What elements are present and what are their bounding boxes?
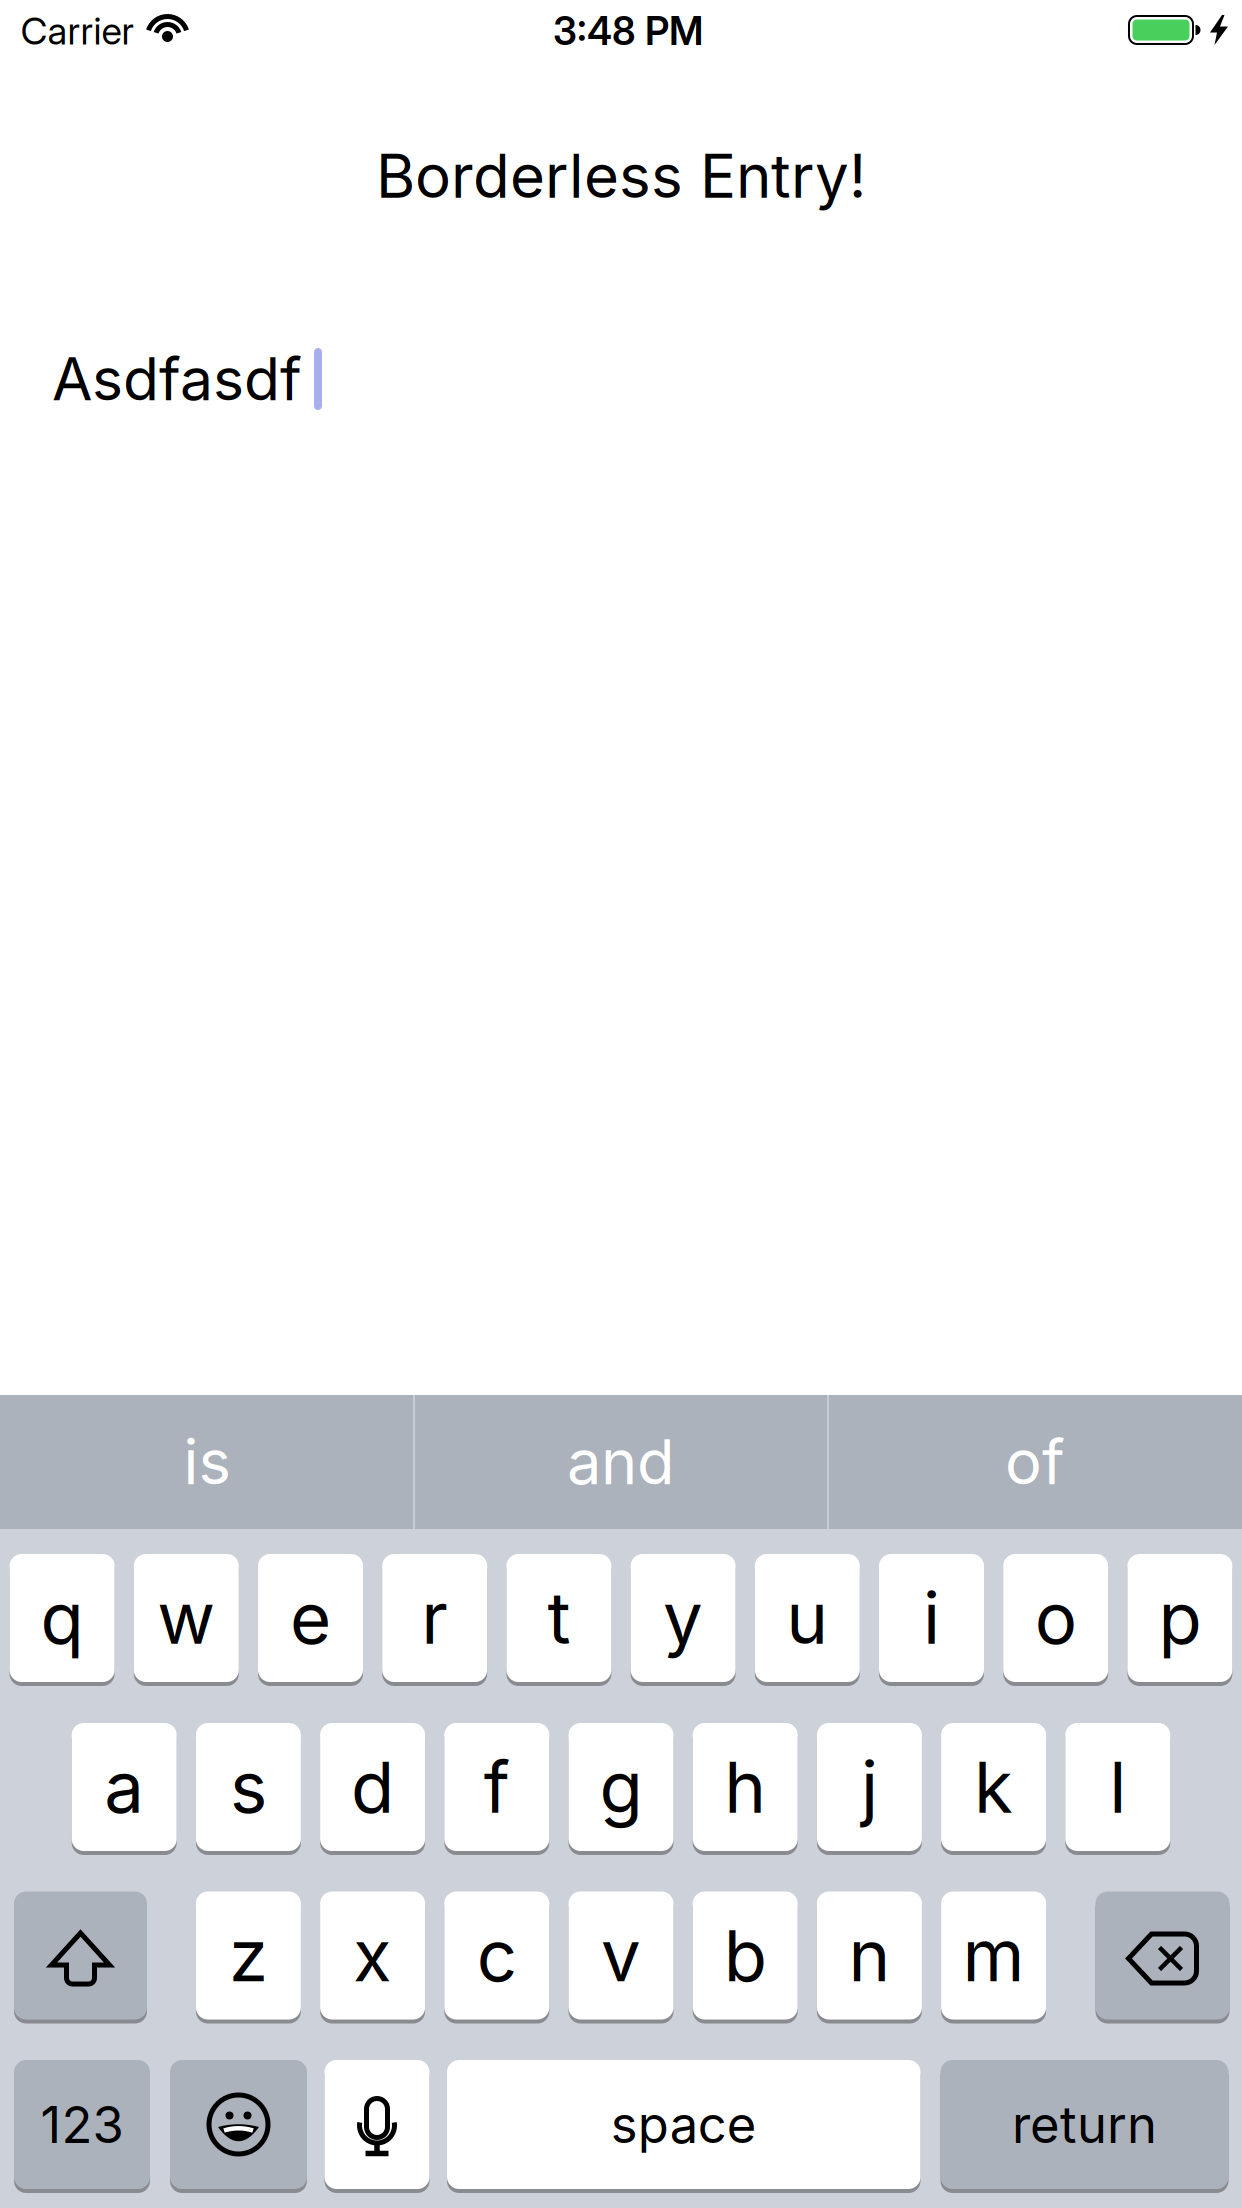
staticText: x	[353, 1914, 392, 1997]
staticText: z	[229, 1914, 268, 1997]
staticText: space	[611, 2095, 757, 2154]
staticText: q	[41, 1576, 84, 1660]
button[interactable]: e	[258, 1552, 363, 1684]
staticText: 123	[40, 2095, 123, 2154]
button[interactable]: a	[72, 1721, 177, 1853]
button[interactable]	[1095, 1889, 1229, 2021]
button[interactable]: d	[320, 1721, 425, 1853]
staticText: v	[601, 1914, 641, 1997]
staticText: is	[183, 1426, 230, 1498]
button[interactable]: s	[196, 1721, 301, 1853]
staticText: t	[547, 1576, 570, 1660]
button[interactable]: r	[382, 1552, 487, 1684]
button[interactable]: q	[10, 1552, 115, 1684]
button[interactable]: i	[879, 1552, 984, 1684]
button[interactable]	[324, 2058, 429, 2191]
button[interactable]: w	[134, 1552, 239, 1684]
staticText: e	[290, 1576, 331, 1660]
staticText: b	[724, 1914, 767, 1997]
staticText: of	[1005, 1426, 1065, 1498]
staticText: a	[104, 1745, 144, 1829]
button[interactable]: u	[755, 1552, 860, 1684]
staticText: 3:48 PM	[553, 8, 703, 54]
staticText: l	[1109, 1745, 1126, 1829]
button[interactable]: is	[5, 1395, 409, 1529]
button[interactable]: n	[817, 1889, 922, 2021]
staticText: Carrier	[20, 9, 133, 53]
staticText: y	[663, 1576, 703, 1660]
staticText: s	[230, 1745, 267, 1829]
staticText: n	[848, 1914, 890, 1997]
button[interactable]	[170, 2058, 307, 2191]
button[interactable]: of	[833, 1395, 1237, 1529]
button[interactable]: b	[693, 1889, 798, 2021]
button[interactable]: g	[568, 1721, 673, 1853]
button[interactable]: h	[693, 1721, 798, 1853]
button[interactable]: t	[506, 1552, 611, 1684]
staticText: d	[351, 1745, 394, 1829]
staticText: f	[484, 1745, 510, 1829]
staticText: h	[724, 1745, 766, 1829]
staticText: g	[599, 1745, 642, 1829]
button[interactable]: k	[941, 1721, 1046, 1853]
button[interactable]: l	[1065, 1721, 1170, 1853]
button[interactable]: return	[940, 2058, 1228, 2191]
button[interactable]: and	[419, 1395, 823, 1529]
button[interactable]: c	[444, 1889, 549, 2021]
button[interactable]: p	[1127, 1552, 1232, 1684]
staticText: c	[477, 1914, 517, 1997]
staticText: u	[786, 1576, 828, 1660]
button[interactable]: 123	[14, 2058, 150, 2191]
button[interactable]: j	[817, 1721, 922, 1853]
staticText: j	[861, 1745, 878, 1829]
staticText: k	[974, 1745, 1013, 1829]
button[interactable]: o	[1003, 1552, 1108, 1684]
button[interactable]: Asdfasdf	[0, 334, 1242, 424]
staticText: Borderless Entry!	[376, 141, 866, 211]
staticText: w	[157, 1576, 215, 1660]
staticText: m	[963, 1914, 1025, 1997]
staticText: p	[1158, 1576, 1201, 1660]
staticText: return	[1012, 2095, 1157, 2154]
button[interactable]: f	[444, 1721, 549, 1853]
button[interactable]: x	[320, 1889, 425, 2021]
staticText: and	[567, 1426, 675, 1498]
staticText: o	[1035, 1576, 1077, 1660]
staticText: i	[923, 1576, 940, 1660]
button[interactable]: space	[447, 2058, 920, 2191]
button[interactable]: z	[196, 1889, 301, 2021]
button[interactable]: y	[631, 1552, 736, 1684]
button[interactable]: m	[941, 1889, 1046, 2021]
button[interactable]	[14, 1889, 147, 2021]
staticText: Asdfasdf	[52, 344, 302, 414]
button[interactable]: v	[568, 1889, 673, 2021]
staticText: r	[421, 1576, 448, 1660]
